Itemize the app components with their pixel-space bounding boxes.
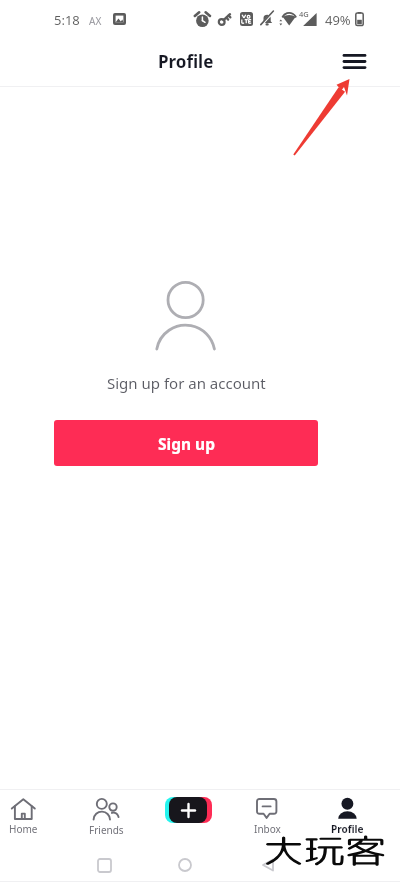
staticText: Profile [158, 50, 214, 73]
button[interactable]: Menu [334, 41, 374, 81]
staticText: Friends [89, 823, 124, 837]
button[interactable]: Sign up [54, 420, 318, 466]
staticText: 49% [325, 11, 351, 29]
button[interactable]: Inbox [234, 790, 300, 838]
staticText: AX [89, 14, 102, 28]
button[interactable]: Recents [84, 848, 124, 882]
button[interactable]: Friends [73, 790, 139, 838]
button[interactable]: Create [160, 794, 214, 826]
button[interactable]: Home [165, 848, 205, 882]
staticText: Inbox [254, 822, 281, 836]
staticText: Sign up for an account [107, 373, 266, 393]
button[interactable]: Home [0, 790, 56, 838]
button[interactable]: Back [248, 848, 288, 882]
button[interactable]: Profile [314, 790, 380, 838]
staticText: Home [9, 822, 38, 836]
staticText: Sign up [158, 433, 215, 454]
staticText: 5:18 [54, 11, 80, 29]
staticText: Profile [331, 822, 364, 836]
staticText: 4G [299, 9, 309, 19]
